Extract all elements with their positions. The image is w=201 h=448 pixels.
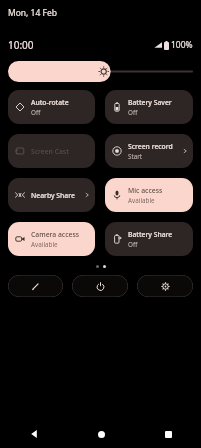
button[interactable]: Camera access	[8, 222, 95, 256]
button[interactable]: Recents	[155, 421, 181, 447]
staticText: 10:00	[8, 38, 34, 52]
staticText: Screen record	[128, 142, 173, 151]
button[interactable]: Screen record	[105, 134, 193, 168]
staticText: Nearby Share	[31, 191, 75, 200]
button[interactable]: Nearby Share	[8, 178, 95, 212]
staticText: Mic access	[128, 186, 163, 195]
button[interactable]: Brightness	[8, 61, 193, 82]
button[interactable]: Settings	[137, 275, 193, 297]
staticText: Start	[128, 152, 143, 161]
staticText: Camera access	[31, 230, 80, 239]
button[interactable]: Home	[88, 421, 114, 447]
staticText: Auto-rotate	[31, 98, 69, 107]
staticText: Battery Share	[128, 230, 173, 239]
staticText: Battery Saver	[128, 98, 172, 107]
button[interactable]: Battery Share	[105, 222, 193, 256]
button[interactable]: Mic access	[105, 178, 193, 212]
staticText: Available	[31, 240, 58, 249]
staticText: Available	[128, 196, 155, 205]
button[interactable]: Power	[72, 275, 128, 297]
staticText: Off	[31, 108, 41, 117]
staticText: Mon, 14 Feb	[8, 7, 57, 19]
button[interactable]: Screen Cast	[8, 134, 95, 168]
button[interactable]: Auto-rotate	[8, 90, 95, 124]
button[interactable]: Battery Saver	[105, 90, 193, 124]
staticText: Off	[128, 108, 138, 117]
staticText: 100%	[171, 39, 193, 51]
button[interactable]: Back	[21, 421, 47, 447]
button[interactable]: Edit	[8, 275, 63, 297]
staticText: Off	[128, 240, 138, 249]
staticText: Screen Cast	[31, 147, 69, 156]
